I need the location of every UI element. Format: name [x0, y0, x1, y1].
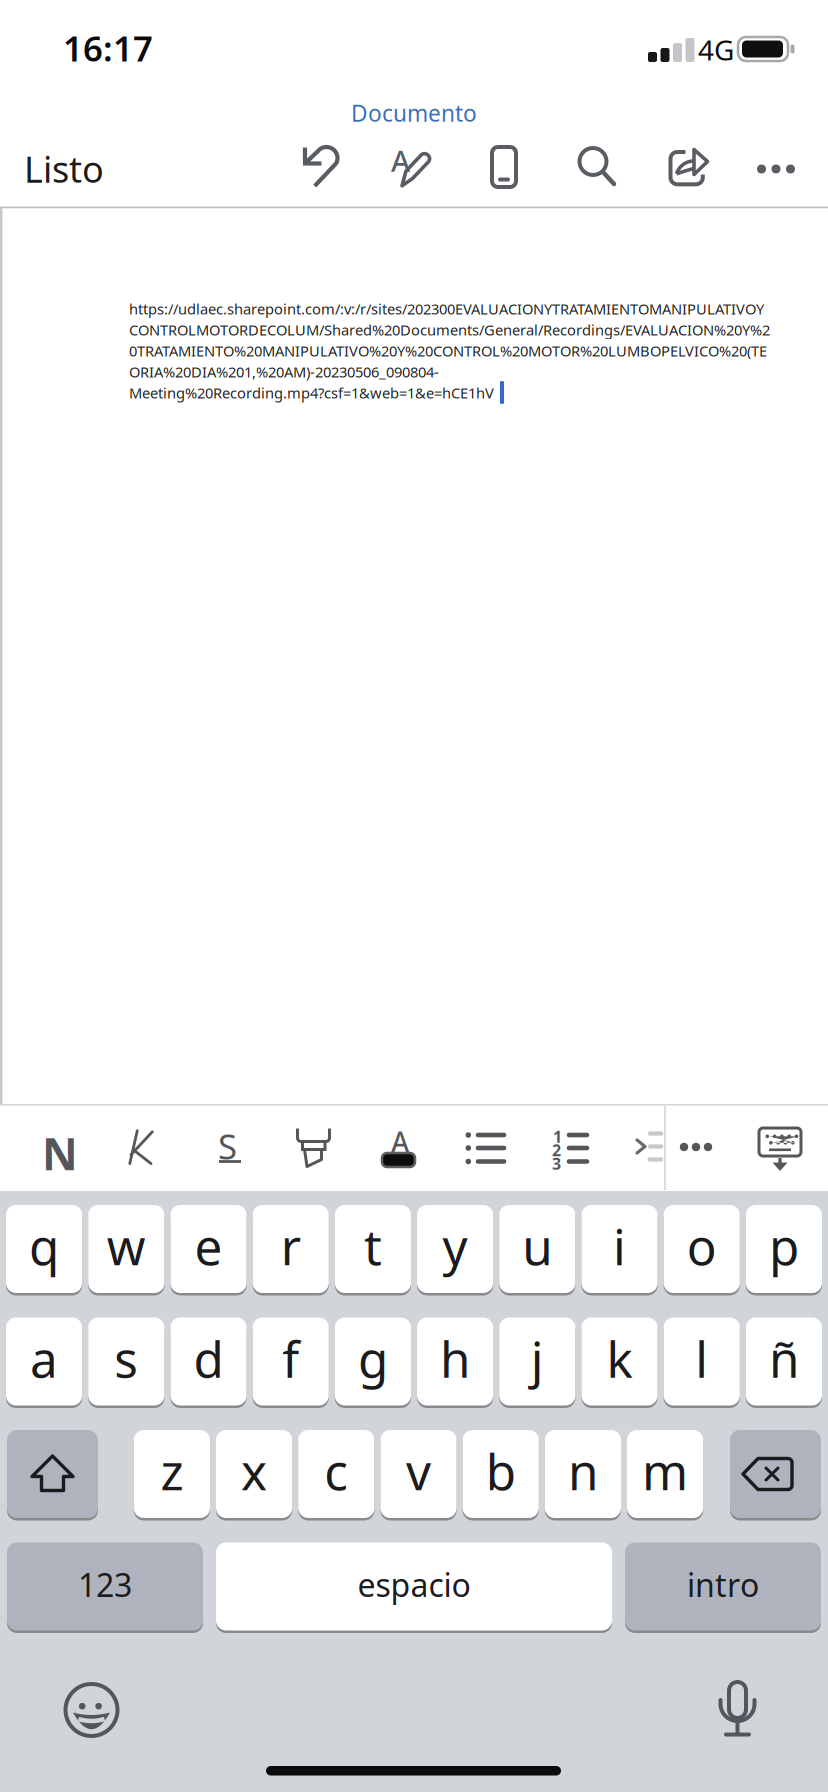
button[interactable]: e [170, 1205, 247, 1293]
staticText: z [160, 1438, 183, 1504]
button[interactable]: ñ [746, 1317, 822, 1405]
button[interactable]: g [335, 1317, 411, 1405]
staticText: 4G [698, 31, 734, 68]
staticText: d [193, 1326, 223, 1391]
staticText: u [522, 1213, 552, 1279]
staticText: espacio [357, 1563, 470, 1606]
button[interactable]: l [664, 1317, 740, 1405]
button[interactable]: a [6, 1317, 82, 1405]
button[interactable]: f [253, 1317, 329, 1405]
button[interactable]: q [6, 1205, 82, 1293]
staticText: k [606, 1326, 632, 1391]
staticText: c [324, 1438, 348, 1504]
staticText: n [568, 1438, 598, 1504]
button[interactable]: k [581, 1317, 658, 1405]
staticText: 16:17 [63, 25, 153, 71]
staticText: v [406, 1438, 431, 1504]
staticText: h [440, 1326, 470, 1391]
button[interactable]: w [88, 1205, 164, 1293]
button[interactable]: r [253, 1205, 329, 1293]
button[interactable]: 123 [7, 1542, 203, 1630]
button[interactable]: Más [752, 140, 802, 194]
button[interactable]: Resaltar [288, 1114, 338, 1178]
button[interactable]: Ocultar teclado [750, 1114, 810, 1178]
button[interactable]: p [746, 1205, 822, 1293]
button[interactable]: u [499, 1205, 575, 1293]
staticText: A [391, 141, 410, 180]
staticText: N [42, 1124, 78, 1182]
staticText: Listo [24, 145, 104, 193]
staticText: ñ [769, 1326, 799, 1391]
button[interactable]: Buscar [570, 140, 622, 194]
button[interactable]: Numeración [540, 1114, 600, 1178]
staticText: p [769, 1213, 799, 1279]
button[interactable]: Formato [385, 140, 443, 194]
button[interactable]: intro [625, 1542, 821, 1630]
staticText: s [114, 1326, 138, 1391]
staticText: b [486, 1438, 516, 1504]
staticText: q [29, 1213, 59, 1279]
button[interactable]: Viñetas [452, 1114, 512, 1178]
staticText: t [364, 1213, 382, 1279]
staticText: f [282, 1326, 299, 1391]
button[interactable]: o [664, 1205, 740, 1293]
staticText: A [391, 1123, 409, 1160]
button[interactable]: y [417, 1205, 493, 1293]
staticText: 1 [553, 1126, 562, 1147]
button[interactable]: d [170, 1317, 247, 1405]
button[interactable]: Documento [274, 98, 554, 128]
button[interactable]: Deshacer [296, 140, 354, 194]
staticText: j [531, 1326, 544, 1391]
staticText: https://udlaec.sharepoint.com/:v:/r/site… [129, 299, 764, 318]
staticText: intro [687, 1563, 759, 1606]
button[interactable]: Sangría [624, 1114, 664, 1178]
staticText: 3 [552, 1153, 561, 1174]
staticText: Documento [351, 98, 477, 128]
button[interactable]: v [380, 1430, 457, 1518]
staticText: 123 [78, 1563, 132, 1606]
button[interactable]: Retroceso [730, 1430, 821, 1518]
staticText: Meeting%20Recording.mp4?csf=1&web=1&e=hC… [129, 383, 494, 402]
staticText: S [218, 1123, 237, 1169]
staticText: ORIA%20DIA%201,%20AM)-20230506_090804- [129, 362, 439, 381]
button[interactable]: Mayúsculas [7, 1430, 98, 1518]
staticText: w [107, 1213, 146, 1279]
staticText: y [443, 1213, 468, 1279]
button[interactable]: Negrita [30, 1114, 80, 1178]
staticText: g [358, 1326, 388, 1391]
button[interactable]: c [298, 1430, 374, 1518]
staticText: 0TRATAMIENTO%20MANIPULATIVO%20Y%20CONTRO… [129, 341, 767, 360]
staticText: CONTROLMOTORDECOLUM/Shared%20Documents/G… [129, 320, 770, 339]
staticText: i [613, 1213, 626, 1279]
button[interactable]: h [417, 1317, 493, 1405]
button[interactable]: j [499, 1317, 575, 1405]
staticText: r [281, 1213, 301, 1279]
button[interactable]: z [134, 1430, 210, 1518]
staticText: m [642, 1438, 688, 1504]
button[interactable]: Cursiva [116, 1114, 166, 1178]
button[interactable]: s [88, 1317, 164, 1405]
button[interactable]: Emoji [58, 1676, 126, 1744]
button[interactable]: Color de fuente [374, 1114, 424, 1178]
button[interactable]: Vista móvil [480, 140, 530, 194]
button[interactable]: espacio [216, 1542, 612, 1630]
button[interactable]: m [627, 1430, 703, 1518]
button[interactable]: Dictado [706, 1676, 770, 1744]
staticText: o [687, 1213, 717, 1279]
button[interactable]: b [463, 1430, 539, 1518]
staticText: l [695, 1326, 708, 1391]
staticText: a [30, 1326, 58, 1391]
staticText: e [194, 1213, 222, 1279]
button[interactable]: Listo [24, 145, 104, 193]
staticText: 2 [552, 1139, 561, 1161]
button[interactable]: i [581, 1205, 658, 1293]
staticText: x [241, 1438, 267, 1504]
button[interactable]: t [335, 1205, 411, 1293]
button[interactable]: Más formato [672, 1114, 720, 1178]
button[interactable]: Compartir [662, 140, 718, 194]
button[interactable]: x [216, 1430, 292, 1518]
button[interactable]: Subrayado [202, 1114, 252, 1178]
button[interactable]: n [545, 1430, 621, 1518]
